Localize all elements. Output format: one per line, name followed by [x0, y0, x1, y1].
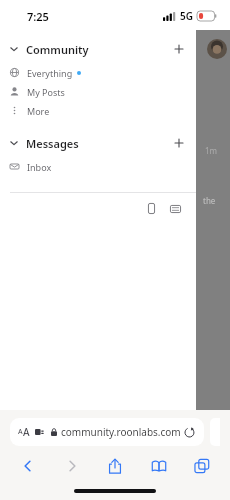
- button[interactable]: Share: [101, 452, 129, 480]
- staticText: Inbox: [27, 161, 52, 173]
- button[interactable]: Community: [0, 38, 196, 60]
- staticText: Messages: [26, 136, 79, 151]
- staticText: the: [203, 195, 216, 206]
- button[interactable]: Tabs: [188, 452, 216, 480]
- button[interactable]: Tablet: [167, 202, 184, 216]
- button[interactable]: Back: [14, 452, 42, 480]
- button[interactable]: Phone: [145, 200, 158, 217]
- staticText: 5G: [180, 9, 193, 23]
- staticText: Community: [26, 42, 89, 57]
- button[interactable]: Reload: [182, 425, 196, 439]
- staticText: My Posts: [27, 86, 65, 98]
- staticText: Everything: [27, 67, 73, 79]
- staticText: 7:25: [27, 9, 49, 24]
- button[interactable]: More: [0, 101, 196, 120]
- button[interactable]: Add Messages: [172, 136, 186, 150]
- button[interactable]: Add Community: [172, 42, 186, 56]
- button[interactable]: My Posts: [0, 82, 196, 101]
- button[interactable]: Inbox: [0, 157, 196, 176]
- staticText: More: [27, 105, 50, 117]
- button[interactable]: Forward: [58, 452, 86, 480]
- staticText: 1m: [205, 145, 218, 156]
- staticText: A: [18, 427, 23, 437]
- button[interactable]: A: [10, 418, 204, 446]
- button[interactable]: Bookmarks: [145, 452, 173, 480]
- button[interactable]: Everything: [0, 63, 196, 82]
- button[interactable]: Messages: [0, 132, 196, 154]
- staticText: community.roonlabs.com: [61, 425, 181, 439]
- staticText: A: [23, 425, 30, 439]
